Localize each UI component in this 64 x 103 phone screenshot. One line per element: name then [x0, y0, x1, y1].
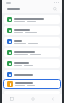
- button[interactable]: [4, 37, 60, 46]
- button[interactable]: [4, 70, 60, 79]
- button[interactable]: [4, 48, 60, 57]
- button[interactable]: Search settings: [2, 5, 62, 13]
- button[interactable]: Back: [49, 95, 56, 102]
- button[interactable]: [4, 15, 60, 24]
- button[interactable]: Recents: [8, 95, 15, 102]
- button[interactable]: [3, 79, 61, 89]
- button[interactable]: [4, 59, 60, 68]
- button[interactable]: [4, 26, 60, 35]
- button[interactable]: Home: [29, 95, 36, 102]
